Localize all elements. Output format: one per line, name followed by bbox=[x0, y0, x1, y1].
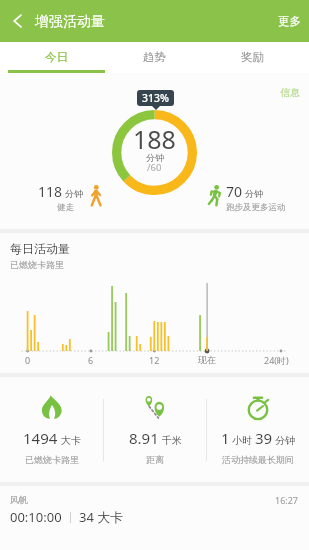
staticText: 趋势 bbox=[143, 50, 166, 64]
staticText: 39 bbox=[255, 428, 273, 448]
staticText: 分钟 bbox=[65, 188, 83, 199]
staticText: 6 bbox=[88, 354, 94, 366]
staticText: 千米 bbox=[162, 434, 182, 447]
staticText: 34 大卡 bbox=[79, 508, 124, 526]
staticText: 0 bbox=[25, 354, 31, 366]
staticText: 313% bbox=[142, 91, 169, 105]
staticText: 奖励 bbox=[241, 50, 264, 64]
button[interactable]: 趋势 bbox=[105, 42, 203, 70]
staticText: 活动持续最长期间 bbox=[222, 454, 294, 465]
button[interactable]: 1494 bbox=[0, 377, 103, 482]
staticText: 已燃烧卡路里 bbox=[25, 454, 79, 465]
button[interactable]: Back bbox=[0, 4, 34, 38]
button[interactable]: 风帆 bbox=[0, 486, 309, 550]
staticText: 118 bbox=[38, 182, 63, 201]
staticText: 已燃烧卡路里 bbox=[10, 259, 64, 270]
staticText: /60 bbox=[147, 161, 162, 174]
staticText: 跑步及更多运动 bbox=[226, 202, 286, 213]
staticText: 16:27 bbox=[275, 494, 299, 506]
staticText: 70 bbox=[226, 182, 243, 201]
staticText: 分钟 bbox=[275, 434, 295, 447]
staticText: 188 bbox=[133, 122, 176, 156]
staticText: 1494 bbox=[23, 428, 58, 448]
staticText: 现在 bbox=[198, 354, 216, 365]
button[interactable]: 8.91 bbox=[104, 377, 206, 482]
button[interactable]: 今日 bbox=[8, 42, 105, 70]
staticText: 大卡 bbox=[61, 434, 81, 447]
staticText: 12 bbox=[149, 354, 160, 366]
staticText: 增强活动量 bbox=[35, 13, 105, 31]
button[interactable]: 1 bbox=[207, 377, 309, 482]
staticText: 距离 bbox=[146, 454, 164, 465]
staticText: 每日活动量 bbox=[10, 241, 70, 256]
staticText: 分钟 bbox=[245, 188, 263, 199]
staticText: 24(时) bbox=[264, 354, 289, 366]
staticText: 1 bbox=[221, 428, 230, 448]
staticText: 00:10:00 bbox=[10, 508, 62, 526]
staticText: 8.91 bbox=[129, 428, 159, 448]
button[interactable]: 奖励 bbox=[203, 42, 301, 70]
button[interactable]: 信息 bbox=[280, 73, 309, 99]
staticText: 小时 bbox=[232, 434, 252, 447]
staticText: 健走 bbox=[57, 202, 74, 213]
staticText: 分钟 bbox=[146, 152, 164, 163]
staticText: 更多 bbox=[278, 14, 301, 28]
staticText: 今日 bbox=[45, 50, 68, 64]
button[interactable]: 更多 bbox=[267, 2, 309, 40]
staticText: 风帆 bbox=[10, 494, 28, 505]
